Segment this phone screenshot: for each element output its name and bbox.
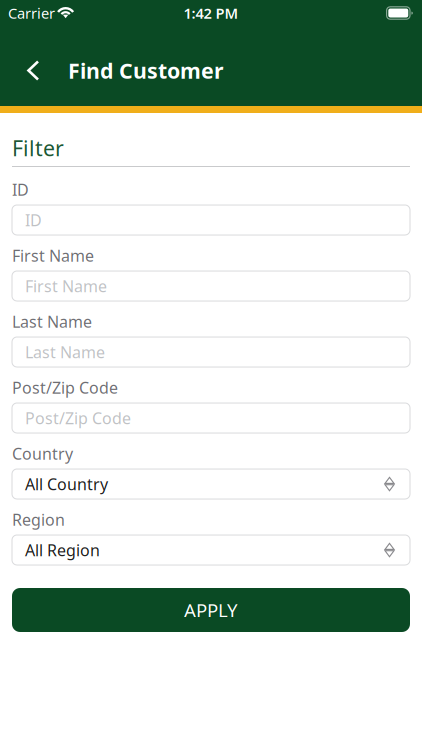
staticText: 1:42 PM [183,3,238,23]
staticText: Region [12,509,65,530]
staticText: All Country [25,473,108,495]
button[interactable]: Back [0,42,68,98]
staticText: Post/Zip Code [25,407,131,429]
staticText: First Name [25,275,107,297]
button[interactable]: First Name [12,271,410,301]
button[interactable]: Last Name [12,337,410,367]
button[interactable]: Post/Zip Code [12,403,410,433]
staticText: First Name [12,245,94,266]
button[interactable]: ID [12,205,410,235]
staticText: ID [12,179,29,200]
button[interactable]: All Country [12,469,410,499]
staticText: Carrier [8,3,55,23]
button[interactable]: All Region [12,535,410,565]
staticText: Last Name [25,341,105,363]
staticText: ID [25,209,42,231]
staticText: Filter [12,134,64,162]
staticText: All Region [25,539,100,561]
button[interactable]: APPLY [12,588,410,632]
staticText: APPLY [184,598,238,622]
staticText: Country [12,443,73,464]
staticText: Last Name [12,311,92,332]
staticText: Post/Zip Code [12,377,118,398]
staticText: Find Customer [68,56,224,85]
